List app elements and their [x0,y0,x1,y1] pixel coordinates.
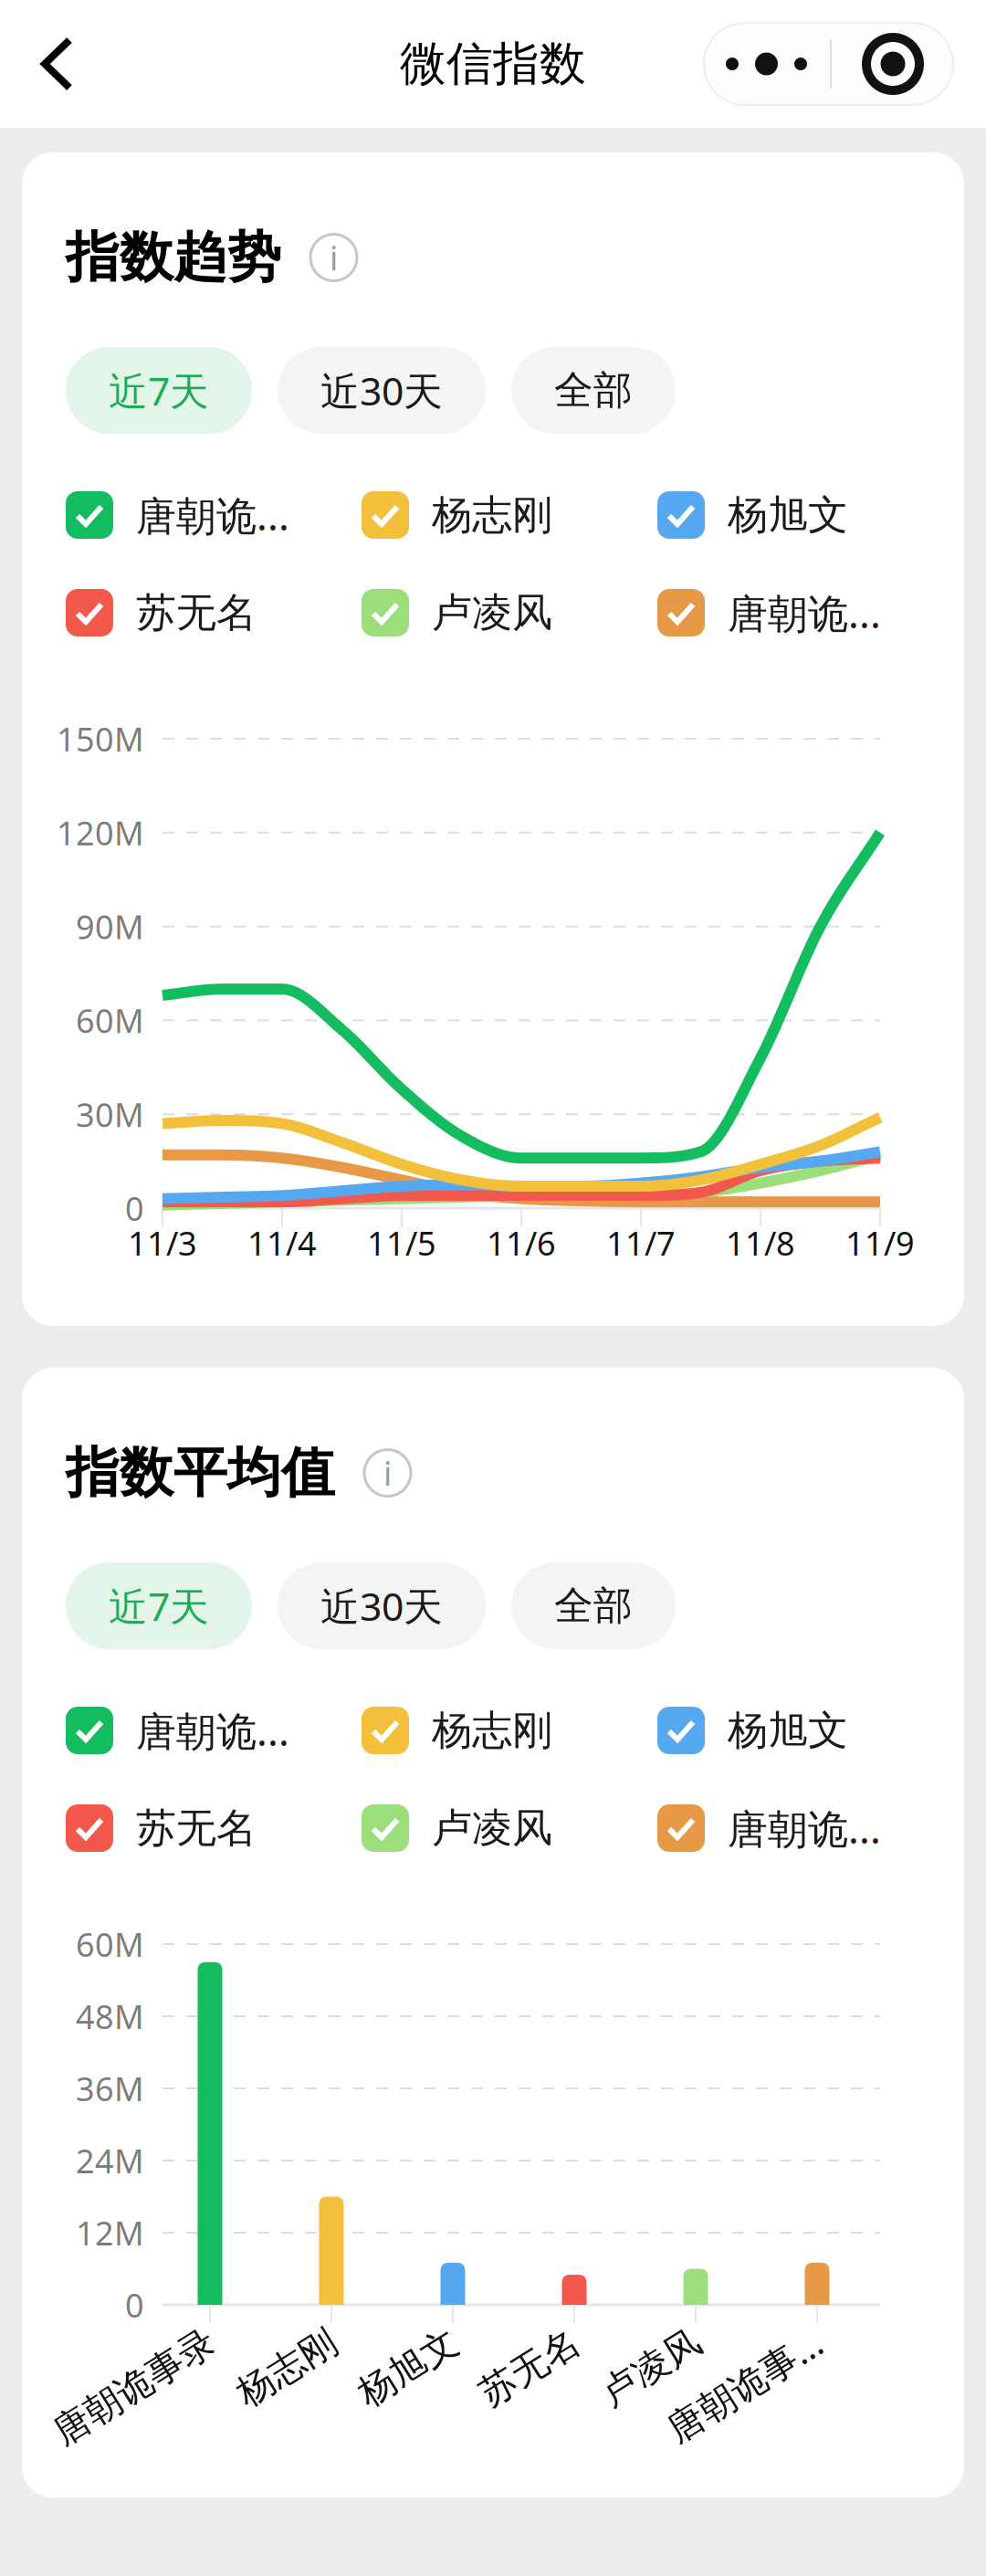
button[interactable]: 近30天 [278,1562,486,1649]
button[interactable]: 唐朝诡... [657,1804,953,1852]
button[interactable]: 杨旭文 [657,1707,953,1754]
staticText: 36M [76,2067,144,2110]
staticText: 150M [57,717,144,761]
button[interactable]: 全部 [511,1562,676,1649]
staticText: 卢凌风 [432,1803,552,1853]
staticText: 11/3 [128,1221,197,1265]
staticText: 0 [125,1186,144,1230]
staticText: 唐朝诡事… [644,2314,819,2363]
button[interactable]: 全部 [511,347,676,434]
button[interactable]: 卢凌风 [362,1804,657,1852]
button[interactable]: 杨志刚 [362,1707,657,1754]
staticText: 指数平均值 [66,1440,335,1506]
staticText: 近7天 [109,365,209,416]
staticText: 90M [76,905,144,948]
staticText: 24M [76,2139,144,2182]
button[interactable]: 苏无名 [66,589,362,636]
staticText: 11/5 [367,1221,436,1265]
button[interactable]: 唐朝诡... [66,491,362,539]
staticText: 11/4 [247,1221,317,1265]
staticText: 近7天 [109,1580,209,1632]
staticText: 指数趋势 [66,225,281,290]
staticText: 60M [76,1922,144,1966]
staticText: 11/6 [487,1221,556,1265]
button[interactable]: 近30天 [278,347,486,434]
button[interactable]: 杨志刚 [362,491,657,539]
staticText: 杨志刚 [432,490,552,540]
staticText: 唐朝诡... [136,488,289,542]
staticText: i [383,1451,392,1495]
staticText: 120M [57,811,144,854]
staticText: 卢凌风 [432,588,552,637]
staticText: 杨志刚 [224,2316,333,2361]
button[interactable]: 近7天 [66,1562,252,1649]
staticText: 苏无名 [467,2316,576,2361]
staticText: 苏无名 [136,1803,257,1853]
staticText: 唐朝诡... [728,1801,881,1855]
staticText: 11/8 [726,1221,795,1265]
button[interactable]: 唐朝诡... [657,589,953,636]
button[interactable]: 近7天 [66,347,252,434]
staticText: 唐朝诡... [728,586,881,639]
button[interactable]: 卢凌风 [362,589,657,636]
button[interactable]: More options [704,23,953,105]
staticText: 杨旭文 [728,490,848,540]
staticText: 全部 [554,1582,633,1630]
button[interactable]: 杨旭文 [657,491,953,539]
button[interactable]: Back [33,23,82,105]
staticText: 苏无名 [136,588,257,637]
staticText: 30M [76,1092,144,1136]
staticText: 全部 [554,366,633,414]
button[interactable]: 苏无名 [66,1804,362,1852]
staticText: 近30天 [320,1580,443,1632]
staticText: 48M [76,1994,144,2038]
staticText: 11/9 [845,1221,915,1265]
staticText: 11/7 [606,1221,676,1265]
staticText: 微信指数 [400,36,586,92]
staticText: i [330,236,338,279]
staticText: 12M [76,2211,144,2254]
staticText: 60M [76,999,144,1042]
button[interactable]: 唐朝诡... [66,1707,362,1754]
staticText: 杨旭文 [728,1706,848,1755]
staticText: 唐朝诡... [136,1704,289,1757]
staticText: 唐朝诡事录 [29,2316,212,2361]
staticText: 杨旭文 [345,2316,455,2361]
staticText: 杨志刚 [432,1706,552,1755]
staticText: 近30天 [320,365,443,416]
staticText: 0 [125,2283,144,2327]
staticText: 卢凌风 [588,2316,698,2361]
